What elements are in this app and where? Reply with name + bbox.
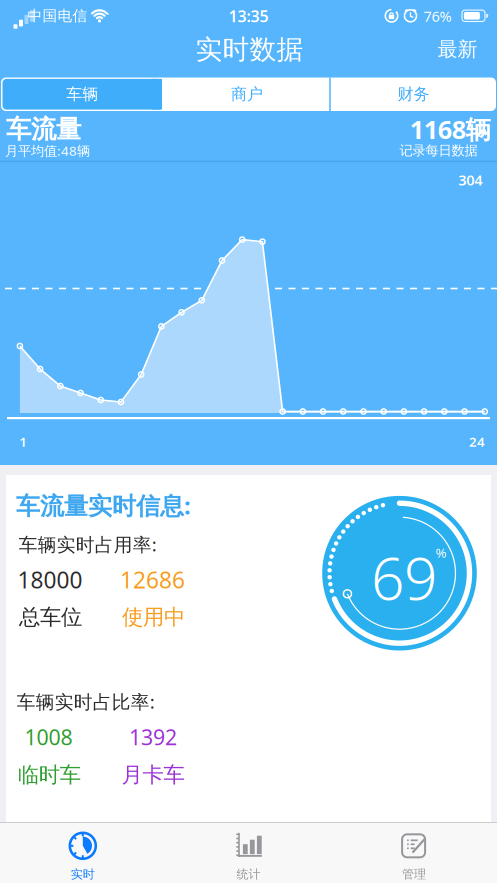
button[interactable]: 统计 [166, 823, 331, 883]
staticText: 统计 [236, 867, 260, 882]
staticText: 1392 [129, 723, 177, 751]
staticText: 24 [469, 433, 485, 450]
staticText: 76% [423, 6, 451, 26]
button[interactable]: 实时 [0, 823, 166, 883]
staticText: 记录每日数据 [400, 142, 478, 159]
button[interactable]: 商户 [164, 77, 329, 111]
staticText: 总车位 [19, 604, 82, 630]
button[interactable]: 管理 [331, 823, 497, 883]
staticText: 最新 [437, 37, 477, 62]
button[interactable]: 最新 [429, 29, 485, 69]
staticText: 304 [458, 170, 482, 190]
staticText: 车流量实时信息: [16, 489, 191, 521]
staticText: 管理 [402, 867, 426, 882]
staticText: 18000 [18, 565, 83, 595]
staticText: 12686 [120, 565, 185, 595]
staticText: 1 [19, 433, 27, 450]
staticText: 使用中 [122, 604, 185, 630]
staticText: 实时 [71, 867, 95, 882]
staticText: 临时车 [18, 762, 81, 788]
staticText: 车辆 [66, 84, 98, 104]
staticText: 13:35 [228, 5, 268, 27]
staticText: 实时数据 [195, 33, 303, 66]
staticText: 中国电信 [27, 7, 87, 25]
staticText: % [436, 544, 447, 561]
staticText: 69 [371, 538, 437, 616]
staticText: 月平均值:48辆 [5, 142, 90, 159]
staticText: 1008 [24, 723, 72, 751]
staticText: 1168辆 [410, 112, 491, 146]
staticText: 车辆实时占用率: [19, 532, 157, 557]
staticText: 商户 [231, 84, 263, 104]
staticText: 月卡车 [121, 762, 184, 788]
staticText: 车流量 [6, 114, 81, 145]
button[interactable]: 车辆 [2, 79, 162, 110]
staticText: 财务 [397, 84, 429, 104]
staticText: 车辆实时占比率: [17, 689, 155, 714]
button[interactable]: 财务 [331, 77, 496, 111]
